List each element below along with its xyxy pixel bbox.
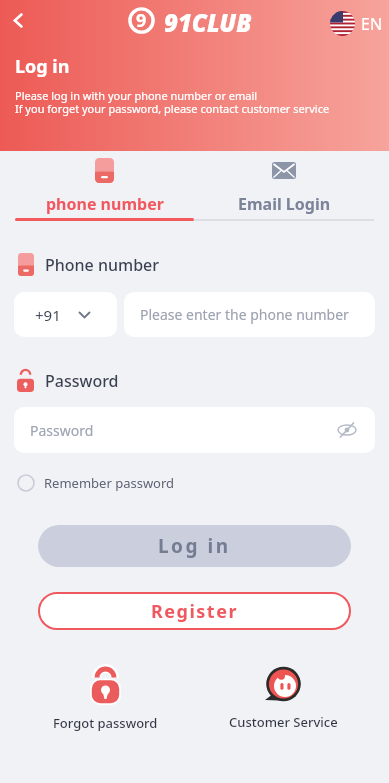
staticText: Please enter the phone number [140, 305, 349, 324]
button[interactable]: Forgot password [40, 666, 170, 732]
staticText: Log in [158, 533, 231, 559]
button[interactable]: Please enter the phone number [124, 292, 375, 337]
button[interactable]: Remember password [17, 474, 175, 492]
staticText: EN [361, 13, 383, 35]
button[interactable]: Password [14, 407, 375, 453]
button[interactable]: Log in [38, 525, 351, 567]
staticText: Remember password [44, 474, 175, 492]
button[interactable]: Email Login [194, 158, 374, 215]
button[interactable] [5, 7, 31, 33]
staticText: Password [30, 421, 94, 440]
staticText: Log in [15, 54, 70, 79]
staticText: Phone number [45, 254, 160, 276]
staticText: +91 [35, 305, 61, 325]
staticText: 9 [136, 8, 147, 33]
button[interactable]: EN [330, 11, 383, 36]
staticText: 91CLUB [164, 6, 252, 39]
staticText: Password [45, 370, 119, 392]
staticText: Forgot password [53, 714, 158, 732]
staticText: Register [151, 599, 238, 624]
staticText: Email Login [238, 193, 331, 215]
button[interactable]: Register [38, 592, 351, 630]
staticText: phone number [46, 193, 164, 215]
button[interactable]: phone number [15, 158, 194, 215]
staticText: Please log in with your phone number or … [15, 88, 330, 116]
staticText: Customer Service [229, 713, 338, 731]
button[interactable]: +91 [14, 292, 117, 337]
button[interactable]: Customer Service [223, 666, 343, 731]
